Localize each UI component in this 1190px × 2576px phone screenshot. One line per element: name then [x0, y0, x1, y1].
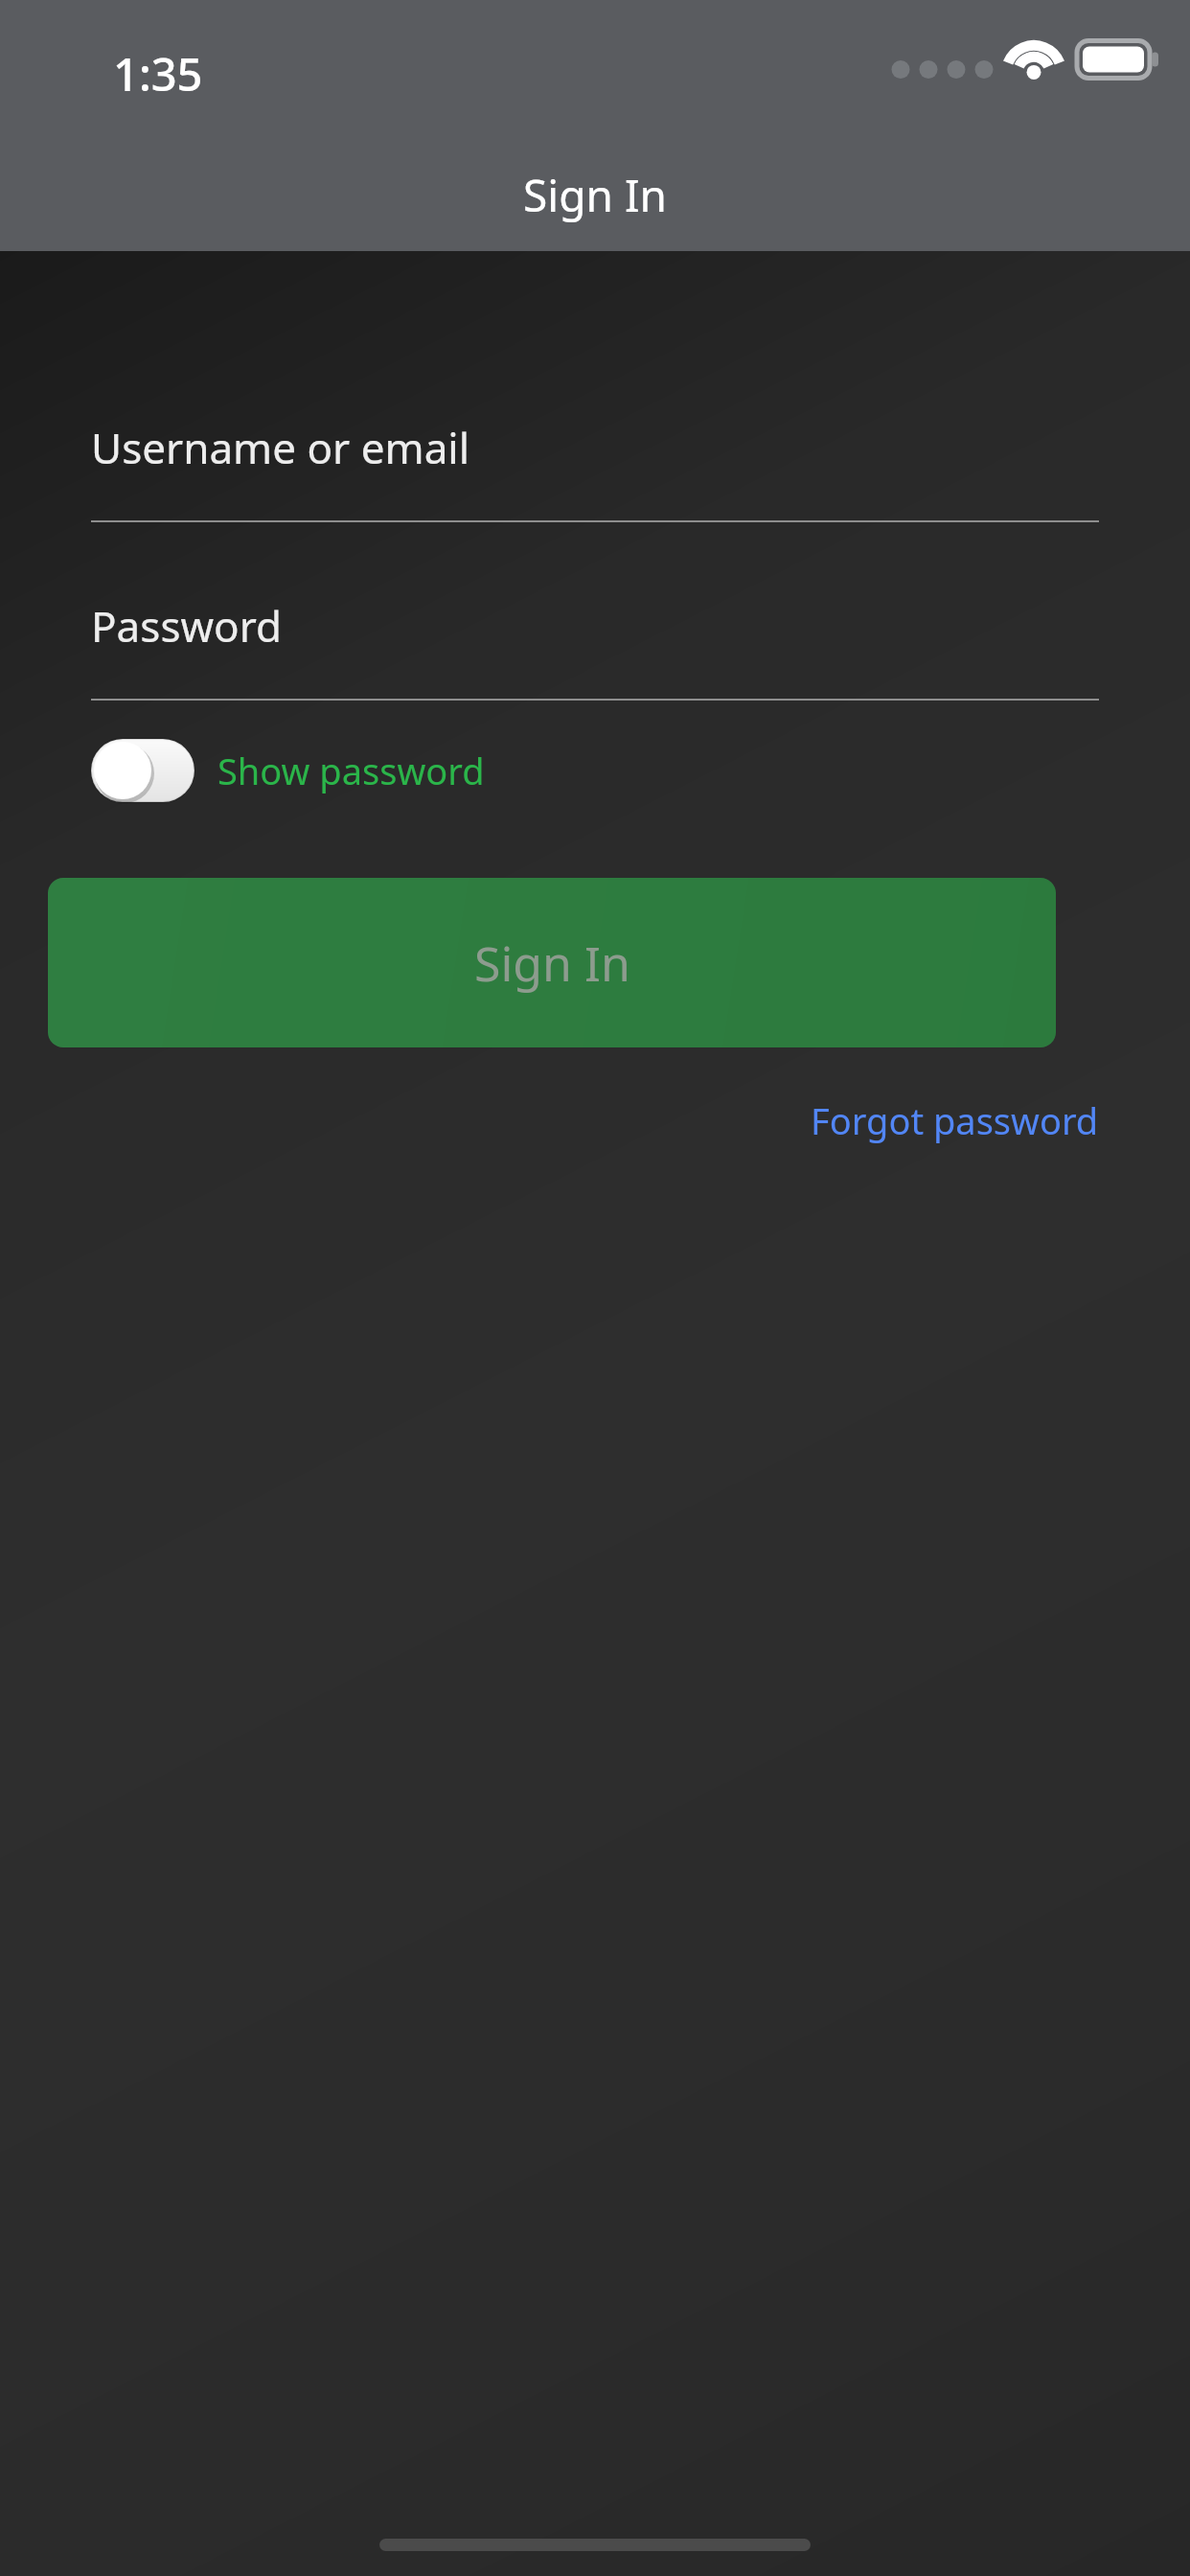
- button[interactable]: Forgot password: [811, 1088, 1099, 1153]
- staticText: Sign In: [0, 165, 1190, 225]
- button[interactable]: Password: [91, 597, 283, 655]
- staticText: Sign In: [474, 931, 630, 996]
- staticText: 1:35: [113, 43, 203, 104]
- button[interactable]: Sign In: [48, 878, 1056, 1047]
- staticText: Show password: [217, 746, 485, 795]
- button[interactable]: Show password toggle: [91, 733, 485, 808]
- button[interactable]: Username or email: [91, 419, 470, 476]
- other: Show password toggle: [91, 739, 195, 802]
